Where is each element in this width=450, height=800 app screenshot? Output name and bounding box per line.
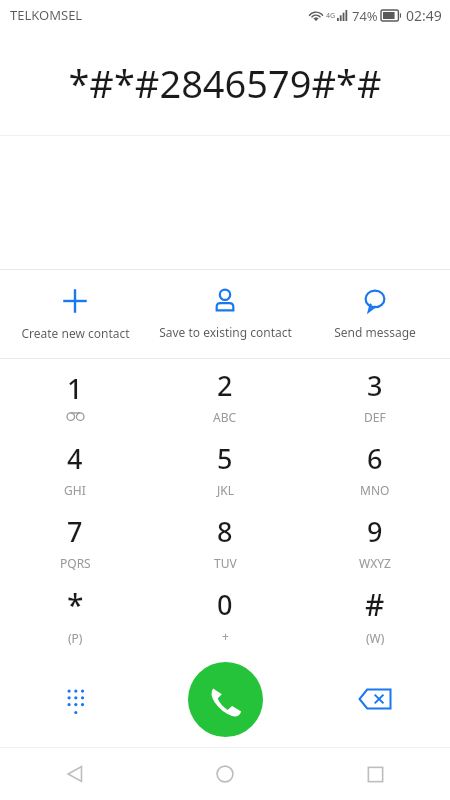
staticText: 3: [367, 367, 383, 404]
staticText: 7: [67, 513, 83, 550]
staticText: 1: [67, 370, 83, 407]
button[interactable]: Send message: [300, 270, 450, 358]
staticText: 4: [67, 440, 83, 477]
staticText: Create new contact: [21, 325, 130, 341]
staticText: 0: [217, 586, 233, 623]
staticText: 4G: [326, 11, 336, 21]
button[interactable]: 6: [300, 432, 450, 505]
staticText: *#*#2846579#*#: [68, 57, 382, 109]
button[interactable]: 9: [300, 505, 450, 578]
button[interactable]: Backspace: [300, 651, 450, 747]
staticText: 02:49: [406, 6, 442, 25]
staticText: 9: [367, 513, 383, 550]
button[interactable]: 5: [150, 432, 300, 505]
staticText: DEF: [364, 409, 386, 425]
button[interactable]: 1: [0, 359, 150, 432]
staticText: (W): [366, 630, 385, 646]
button[interactable]: 7: [0, 505, 150, 578]
staticText: #: [365, 584, 385, 625]
staticText: +: [222, 628, 229, 644]
button[interactable]: Hide keypad: [0, 651, 150, 747]
button[interactable]: Call: [188, 662, 263, 737]
button[interactable]: *: [0, 578, 150, 651]
staticText: 2: [217, 367, 233, 404]
button[interactable]: #: [300, 578, 450, 651]
staticText: PQRS: [60, 555, 91, 571]
staticText: 8: [217, 513, 233, 550]
staticText: 74%: [352, 7, 378, 25]
staticText: WXYZ: [359, 555, 391, 571]
staticText: *: [67, 584, 84, 625]
button[interactable]: 4: [0, 432, 150, 505]
staticText: Send message: [334, 324, 416, 340]
button[interactable]: 2: [150, 359, 300, 432]
staticText: MNO: [360, 482, 390, 498]
button[interactable]: 3: [300, 359, 450, 432]
staticText: TELKOMSEL: [10, 6, 83, 24]
button[interactable]: Create new contact: [0, 270, 150, 358]
staticText: 5: [217, 440, 233, 477]
staticText: ABC: [213, 409, 237, 425]
button[interactable]: 0: [150, 578, 300, 651]
button[interactable]: 8: [150, 505, 300, 578]
staticText: TUV: [214, 555, 237, 571]
button[interactable]: Recents: [300, 748, 450, 800]
staticText: Save to existing contact: [159, 324, 292, 340]
button[interactable]: Back: [0, 748, 150, 800]
button[interactable]: Home: [150, 748, 300, 800]
staticText: GHI: [64, 482, 86, 498]
staticText: 6: [367, 440, 383, 477]
staticText: (P): [68, 630, 83, 646]
staticText: JKL: [217, 482, 234, 498]
button[interactable]: Save to existing contact: [150, 270, 300, 358]
